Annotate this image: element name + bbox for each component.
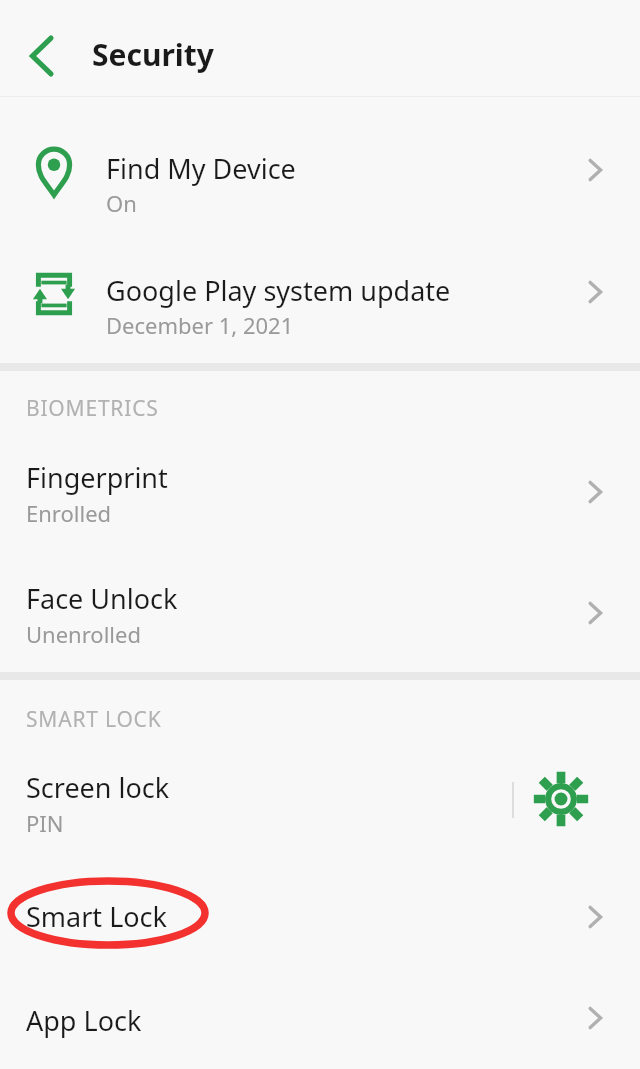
button[interactable]: Back — [14, 28, 70, 84]
button[interactable]: Google Play system update — [0, 232, 640, 353]
staticText: Security — [92, 34, 214, 75]
staticText: On — [106, 188, 137, 218]
staticText: Find My Device — [106, 150, 296, 187]
staticText: Enrolled — [26, 498, 112, 528]
staticText: Smart Lock — [26, 898, 167, 935]
staticText: SMART LOCK — [26, 705, 162, 734]
staticText: Face Unlock — [26, 580, 178, 617]
staticText: Unenrolled — [26, 619, 141, 649]
button[interactable]: App Lock — [0, 985, 640, 1051]
staticText: Google Play system update — [106, 272, 451, 309]
button[interactable]: Find My Device — [0, 110, 640, 231]
button[interactable]: Screen lock settings — [533, 771, 589, 827]
button[interactable]: Fingerprint — [0, 442, 640, 542]
button[interactable]: Smart Lock — [0, 878, 640, 948]
staticText: December 1, 2021 — [106, 310, 294, 340]
staticText: Fingerprint — [26, 459, 168, 496]
button[interactable]: Face Unlock — [0, 563, 640, 663]
button[interactable]: Screen lock — [0, 752, 640, 847]
staticText: BIOMETRICS — [26, 394, 159, 423]
staticText: App Lock — [26, 1002, 142, 1039]
staticText: PIN — [26, 808, 64, 838]
staticText: Screen lock — [26, 769, 170, 806]
